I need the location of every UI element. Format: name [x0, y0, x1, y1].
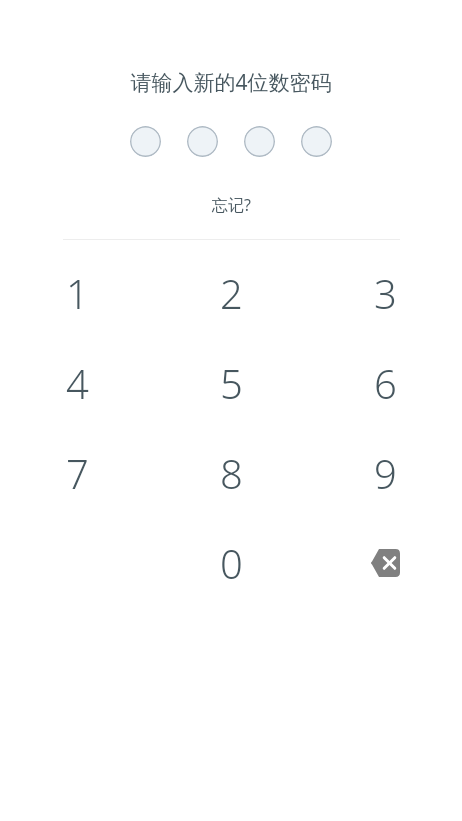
- button[interactable]: 4: [0, 338, 154, 428]
- staticText: 4: [66, 356, 89, 410]
- button[interactable]: 8: [154, 428, 308, 518]
- staticText: 请输入新的4位数密码: [130, 68, 332, 97]
- staticText: 2: [220, 266, 243, 320]
- button[interactable]: 9: [308, 428, 462, 518]
- button[interactable]: 1: [0, 248, 154, 338]
- staticText: 9: [374, 446, 397, 500]
- button[interactable]: 5: [154, 338, 308, 428]
- staticText: 5: [220, 356, 243, 410]
- staticText: 0: [220, 536, 243, 590]
- button[interactable]: 0: [154, 518, 308, 608]
- button[interactable]: 6: [308, 338, 462, 428]
- staticText: 1: [66, 266, 89, 320]
- button[interactable]: 3: [308, 248, 462, 338]
- button[interactable]: 7: [0, 428, 154, 518]
- button[interactable]: Backspace: [308, 518, 462, 608]
- staticText: 7: [66, 446, 89, 500]
- staticText: 6: [374, 356, 397, 410]
- staticText: 3: [374, 266, 397, 320]
- staticText: 8: [220, 446, 243, 500]
- button[interactable]: 2: [154, 248, 308, 338]
- staticText: 忘记?: [212, 194, 251, 216]
- button[interactable]: 忘记?: [212, 194, 251, 216]
